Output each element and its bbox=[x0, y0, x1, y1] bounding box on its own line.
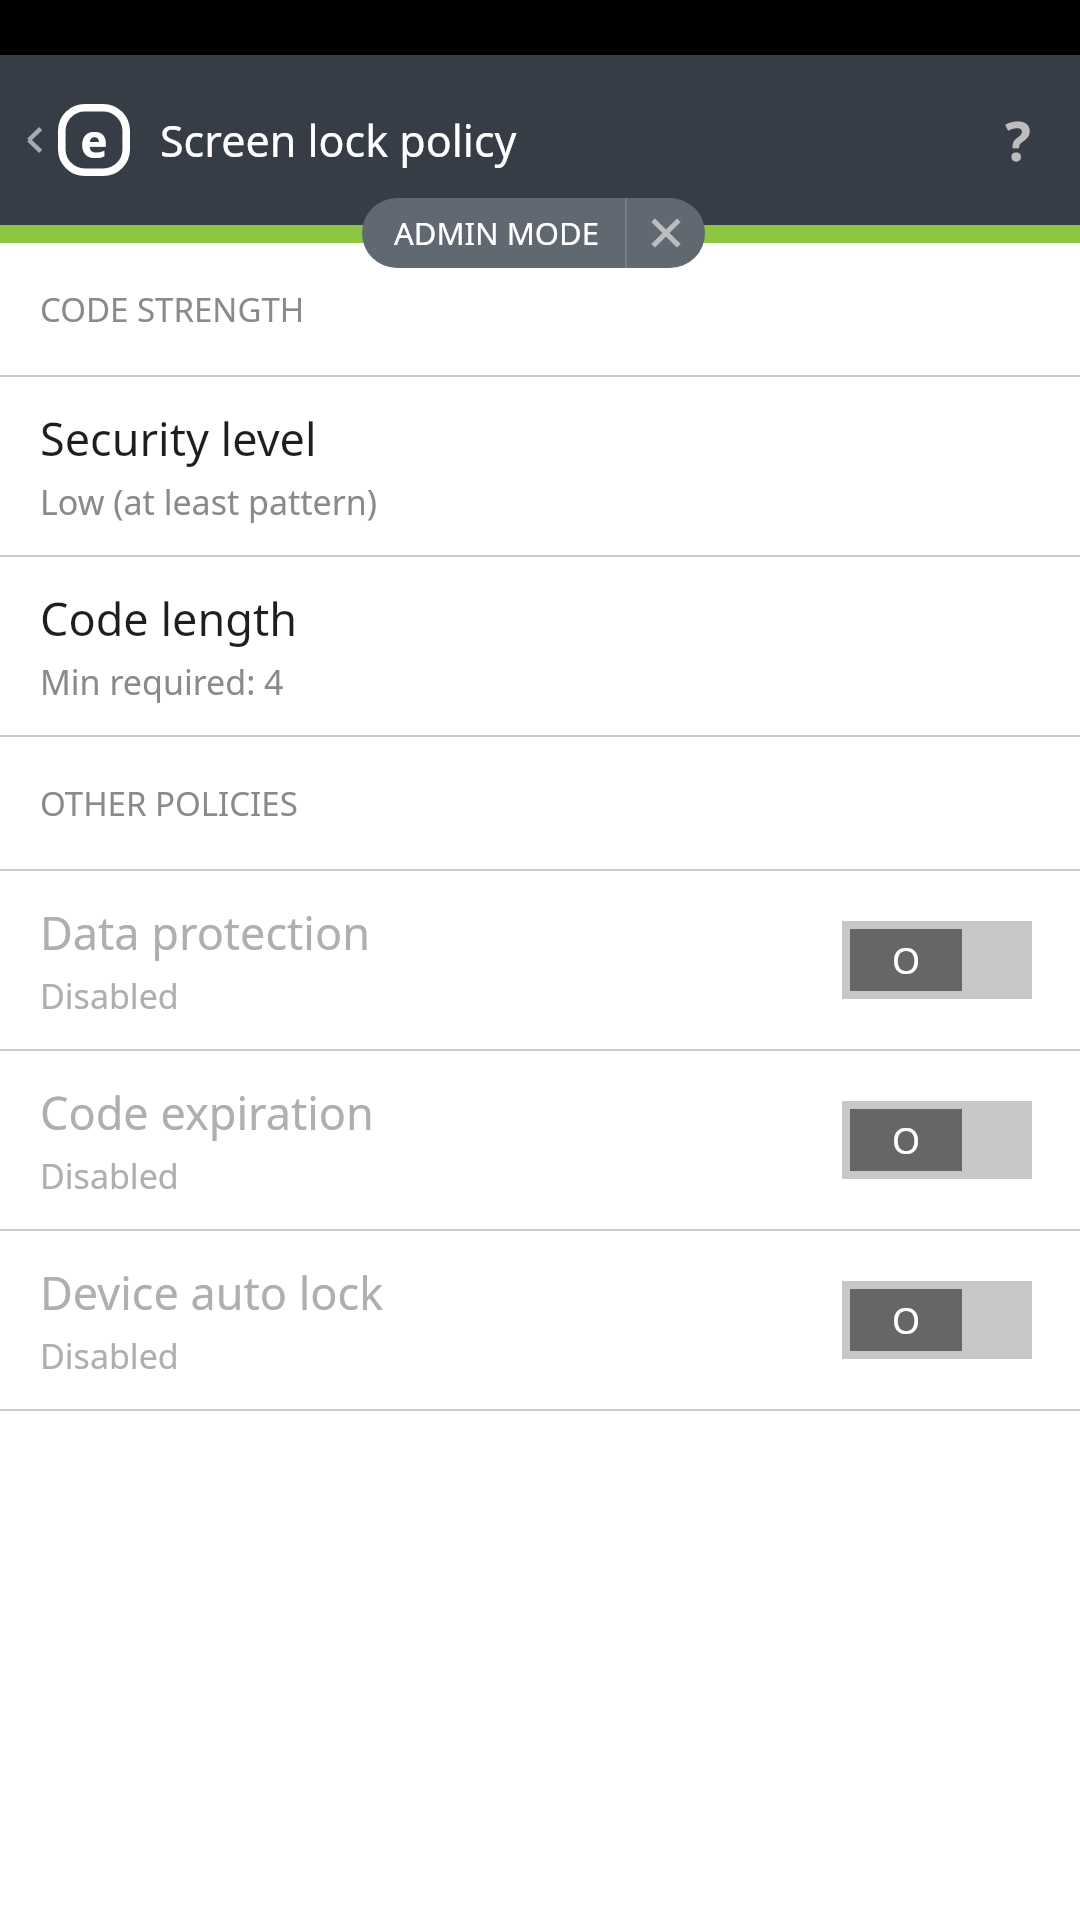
staticText: Low (at least pattern) bbox=[40, 479, 378, 525]
staticText: O bbox=[892, 1296, 921, 1345]
staticText: OTHER POLICIES bbox=[40, 781, 298, 826]
staticText: Min required: 4 bbox=[40, 659, 284, 705]
button[interactable]: Code length bbox=[0, 557, 1080, 735]
button[interactable]: Code expiration switch, off bbox=[842, 1101, 1032, 1179]
staticText: CODE STRENGTH bbox=[40, 287, 305, 332]
staticText: ? bbox=[1005, 103, 1031, 177]
staticText: Disabled bbox=[40, 1333, 179, 1379]
button[interactable]: Exit admin mode bbox=[627, 198, 705, 268]
button[interactable]: Device auto lock bbox=[0, 1231, 1080, 1409]
button[interactable]: Back bbox=[14, 55, 138, 225]
button[interactable]: Data protection bbox=[0, 871, 1080, 1049]
staticText: Data protection bbox=[40, 902, 370, 963]
staticText: ADMIN MODE bbox=[394, 212, 599, 254]
staticText: Code expiration bbox=[40, 1082, 374, 1143]
staticText: O bbox=[892, 936, 921, 985]
staticText: O bbox=[892, 1116, 921, 1165]
button[interactable]: Device auto lock switch, off bbox=[842, 1281, 1032, 1359]
staticText: Security level bbox=[40, 408, 317, 469]
button[interactable]: Help bbox=[978, 100, 1058, 180]
button[interactable]: Data protection switch, off bbox=[842, 921, 1032, 999]
button[interactable]: Code expiration bbox=[0, 1051, 1080, 1229]
staticText: Screen lock policy bbox=[160, 111, 517, 170]
staticText: Code length bbox=[40, 588, 297, 649]
staticText: Device auto lock bbox=[40, 1262, 384, 1323]
staticText: e bbox=[80, 109, 108, 172]
staticText: Disabled bbox=[40, 973, 179, 1019]
button[interactable]: Security level bbox=[0, 377, 1080, 555]
staticText: Disabled bbox=[40, 1153, 179, 1199]
button[interactable]: ADMIN MODE bbox=[362, 198, 625, 268]
